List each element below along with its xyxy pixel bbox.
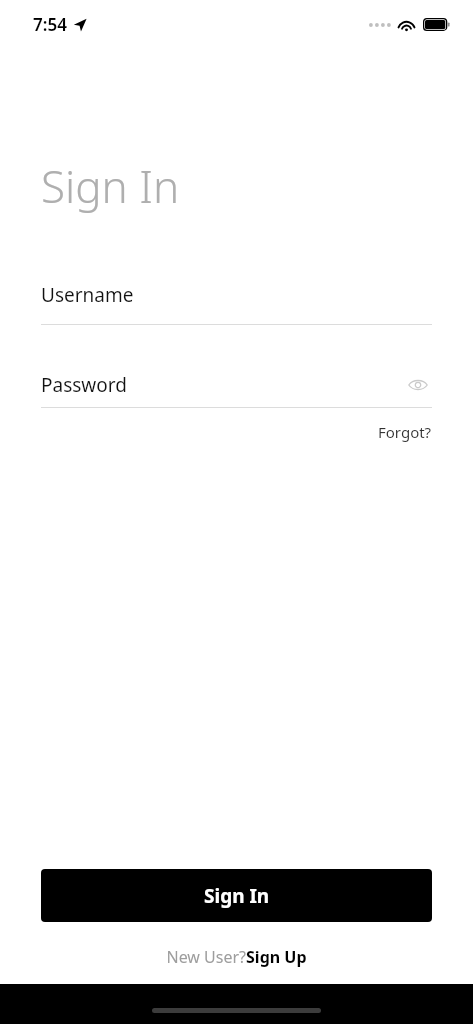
- button[interactable]: Show password: [404, 371, 432, 399]
- staticText: New User?Sign Up: [166, 946, 307, 968]
- staticText: 7:54: [33, 13, 67, 36]
- button[interactable]: Forgot?: [378, 422, 432, 442]
- button[interactable]: Username: [41, 282, 432, 325]
- button[interactable]: Sign In: [41, 869, 432, 922]
- staticText: Sign In: [204, 883, 270, 909]
- staticText: Sign In: [41, 156, 180, 216]
- staticText: Forgot?: [378, 422, 432, 442]
- button[interactable]: Password: [41, 371, 432, 408]
- button[interactable]: New User?Sign Up: [166, 946, 307, 968]
- staticText: Username: [41, 282, 134, 308]
- staticText: Password: [41, 372, 404, 398]
